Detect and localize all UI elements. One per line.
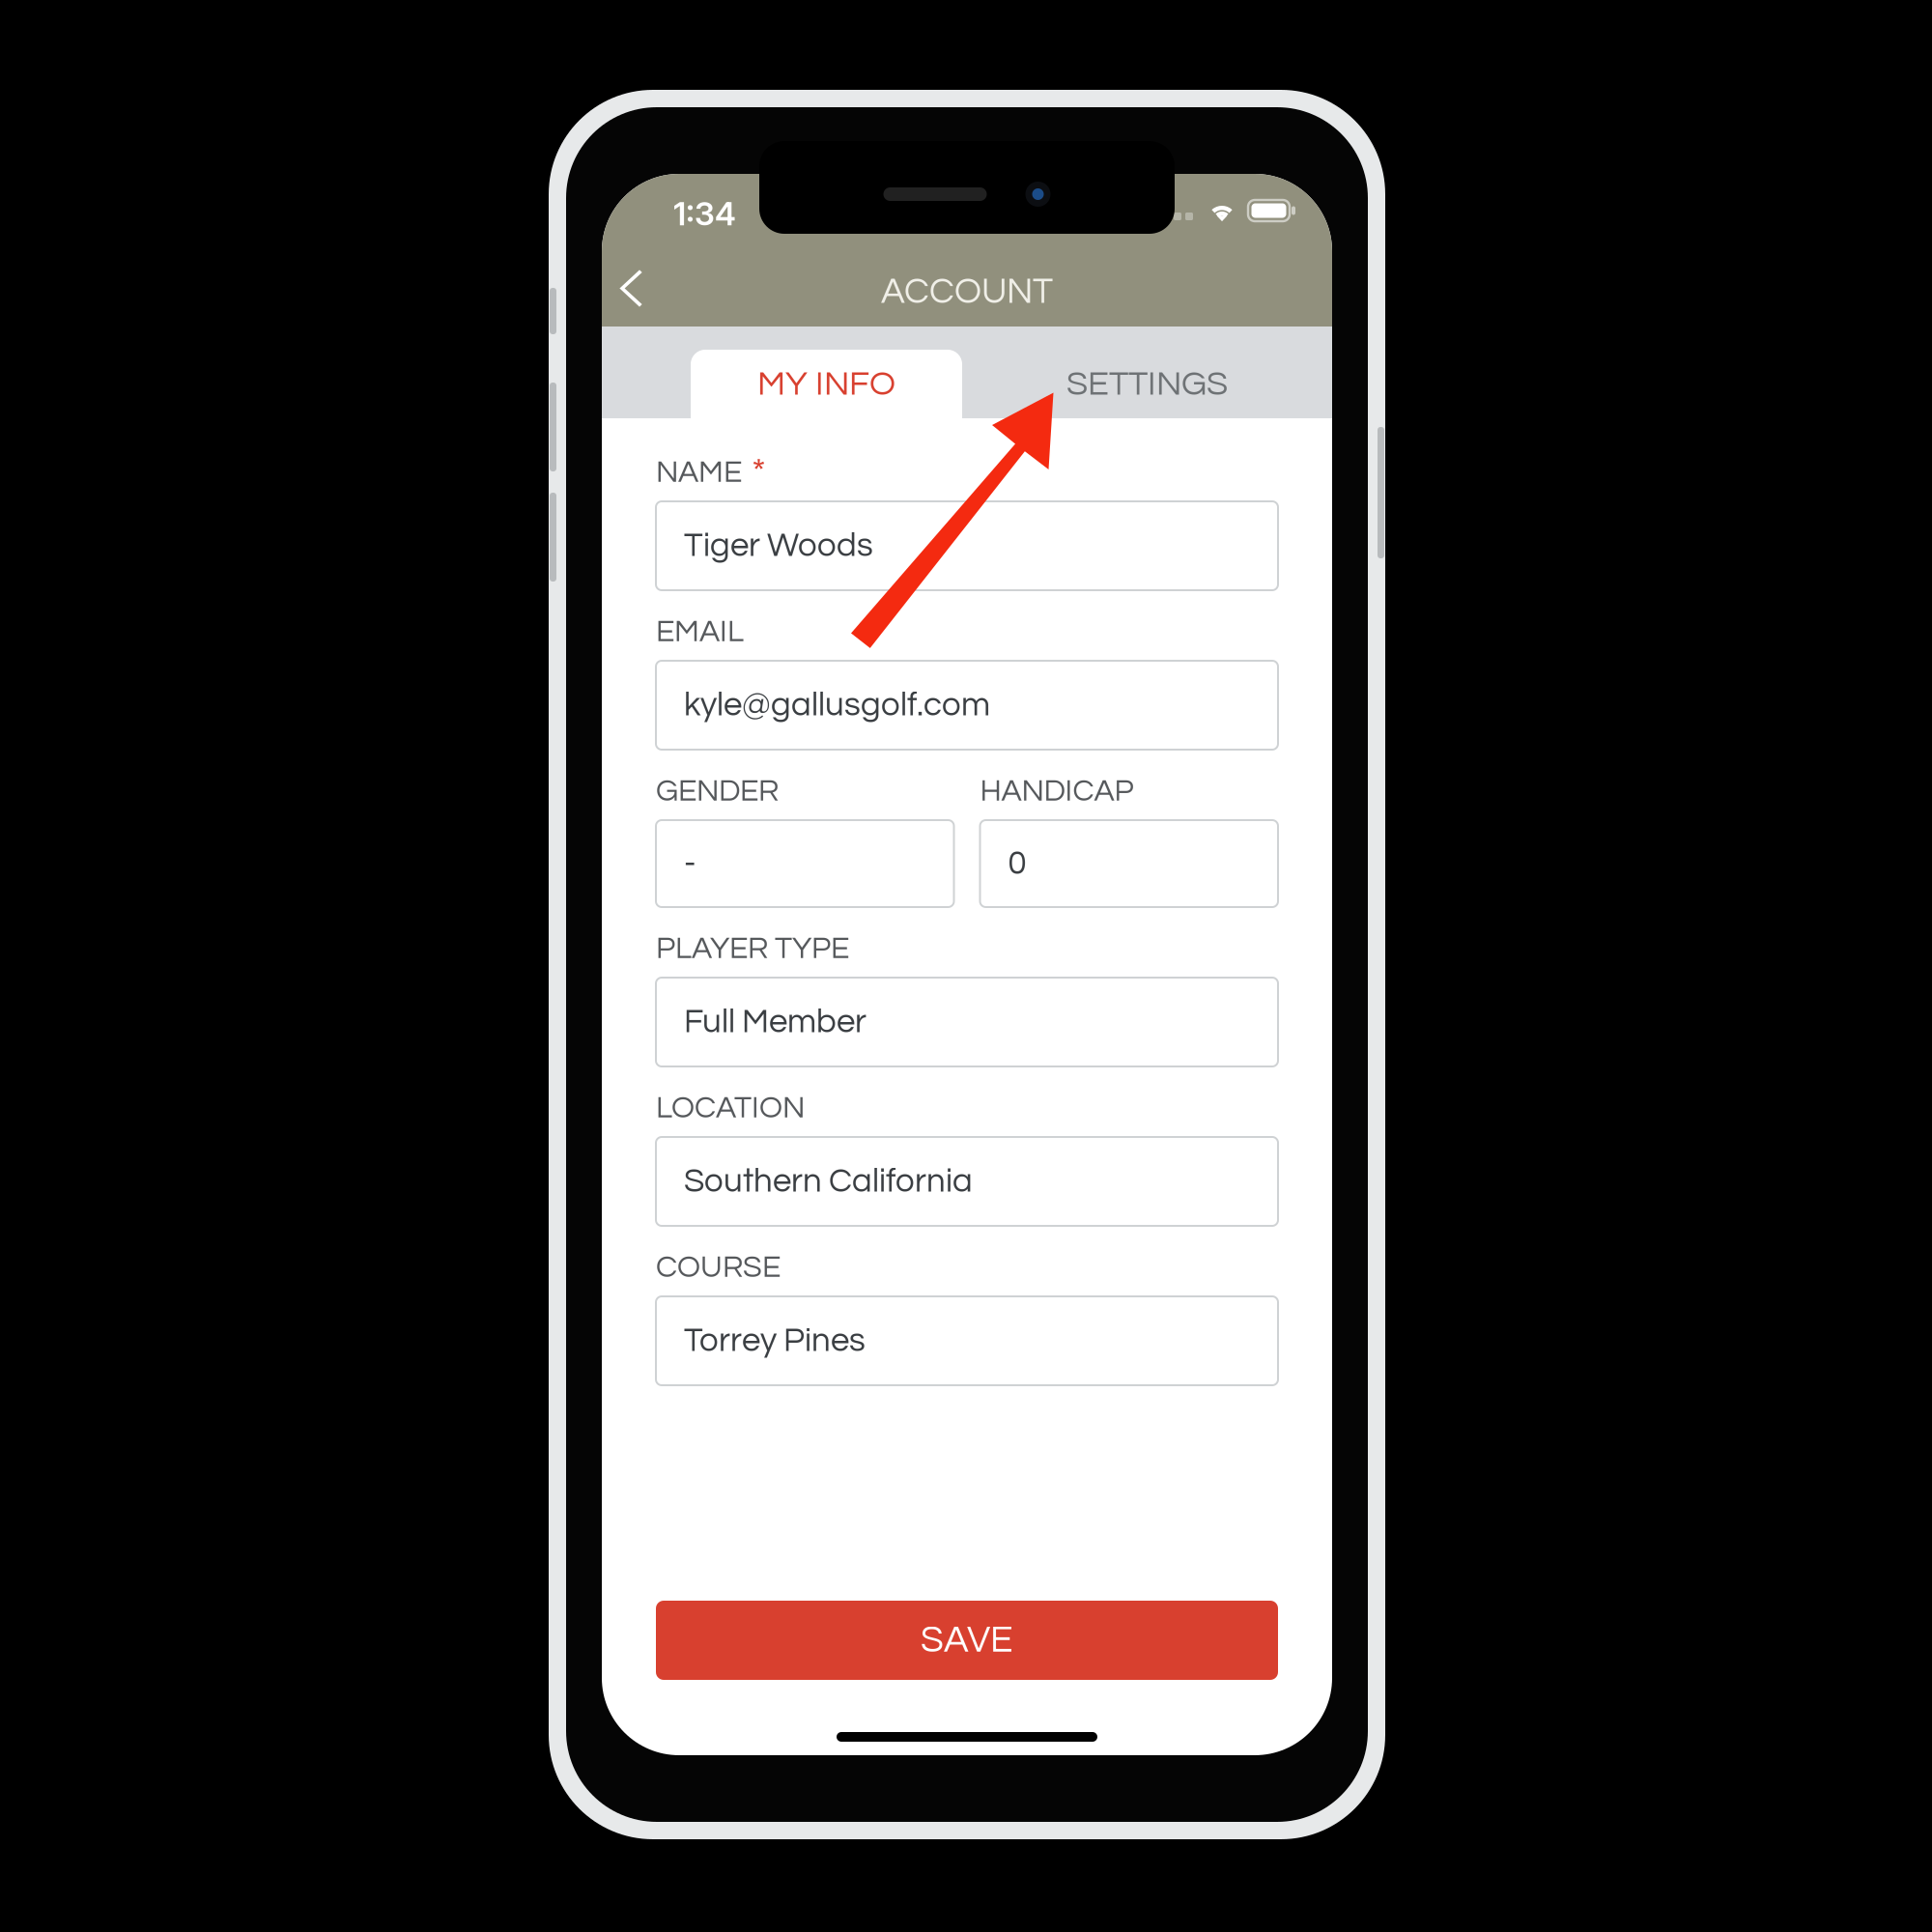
staticText: ACCOUNT [881,273,1053,310]
button[interactable]: MY INFO [691,350,962,418]
staticText: SAVE [921,1621,1013,1659]
staticText: Torrey Pines [684,1324,866,1358]
staticText: Southern California [684,1164,973,1199]
staticText: GENDER [656,775,779,807]
staticText: Full Member [684,1005,867,1039]
staticText: * [752,452,766,492]
staticText: HANDICAP [980,775,1134,807]
staticText: PLAYER TYPE [656,933,849,965]
staticText: COURSE [656,1251,781,1283]
staticText: LOCATION [656,1092,805,1124]
staticText: 0 [1008,846,1026,881]
staticText: 1:34 [673,194,736,233]
staticText: SETTINGS [1066,366,1228,402]
staticText: EMAIL [656,616,744,648]
button[interactable]: SETTINGS [962,350,1332,418]
button[interactable]: Back [598,255,668,325]
staticText: kyle@gallusgolf.com [684,688,990,722]
button[interactable]: SAVE [602,1601,1332,1680]
staticText: NAME [656,456,742,488]
staticText: Tiger Woods [684,528,873,563]
staticText: MY INFO [757,366,895,402]
staticText: - [684,846,696,881]
